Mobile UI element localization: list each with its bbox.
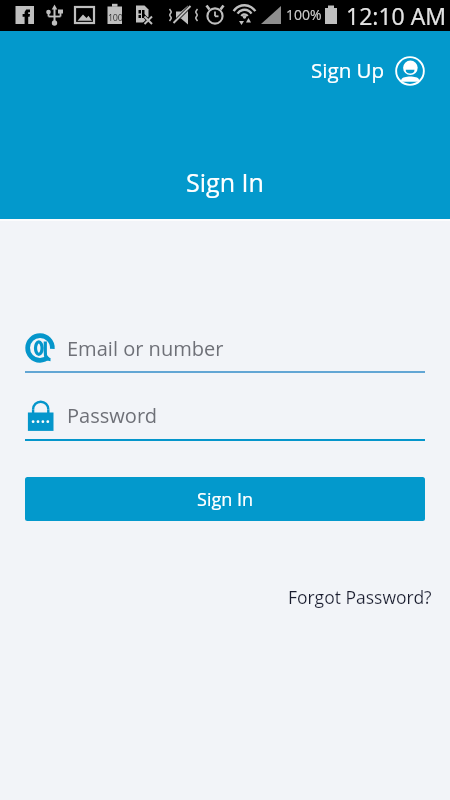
staticText: 100 [108, 11, 123, 23]
staticText: Sign Up [311, 56, 385, 84]
other: Password [26, 399, 54, 427]
staticText: 12:10 AM [346, 0, 447, 31]
button[interactable]: Sign Up [303, 48, 433, 94]
staticText: Sign In [197, 487, 254, 512]
button[interactable]: Forgot Password? [288, 585, 432, 609]
staticText: 100% [286, 5, 322, 24]
staticText: Sign In [186, 165, 264, 199]
other: Email [25, 333, 55, 363]
staticText: Password [67, 402, 157, 429]
other: Account [395, 56, 425, 86]
staticText: Forgot Password? [288, 585, 432, 609]
staticText: Email or number [67, 335, 224, 362]
button[interactable]: Sign In [25, 477, 425, 521]
